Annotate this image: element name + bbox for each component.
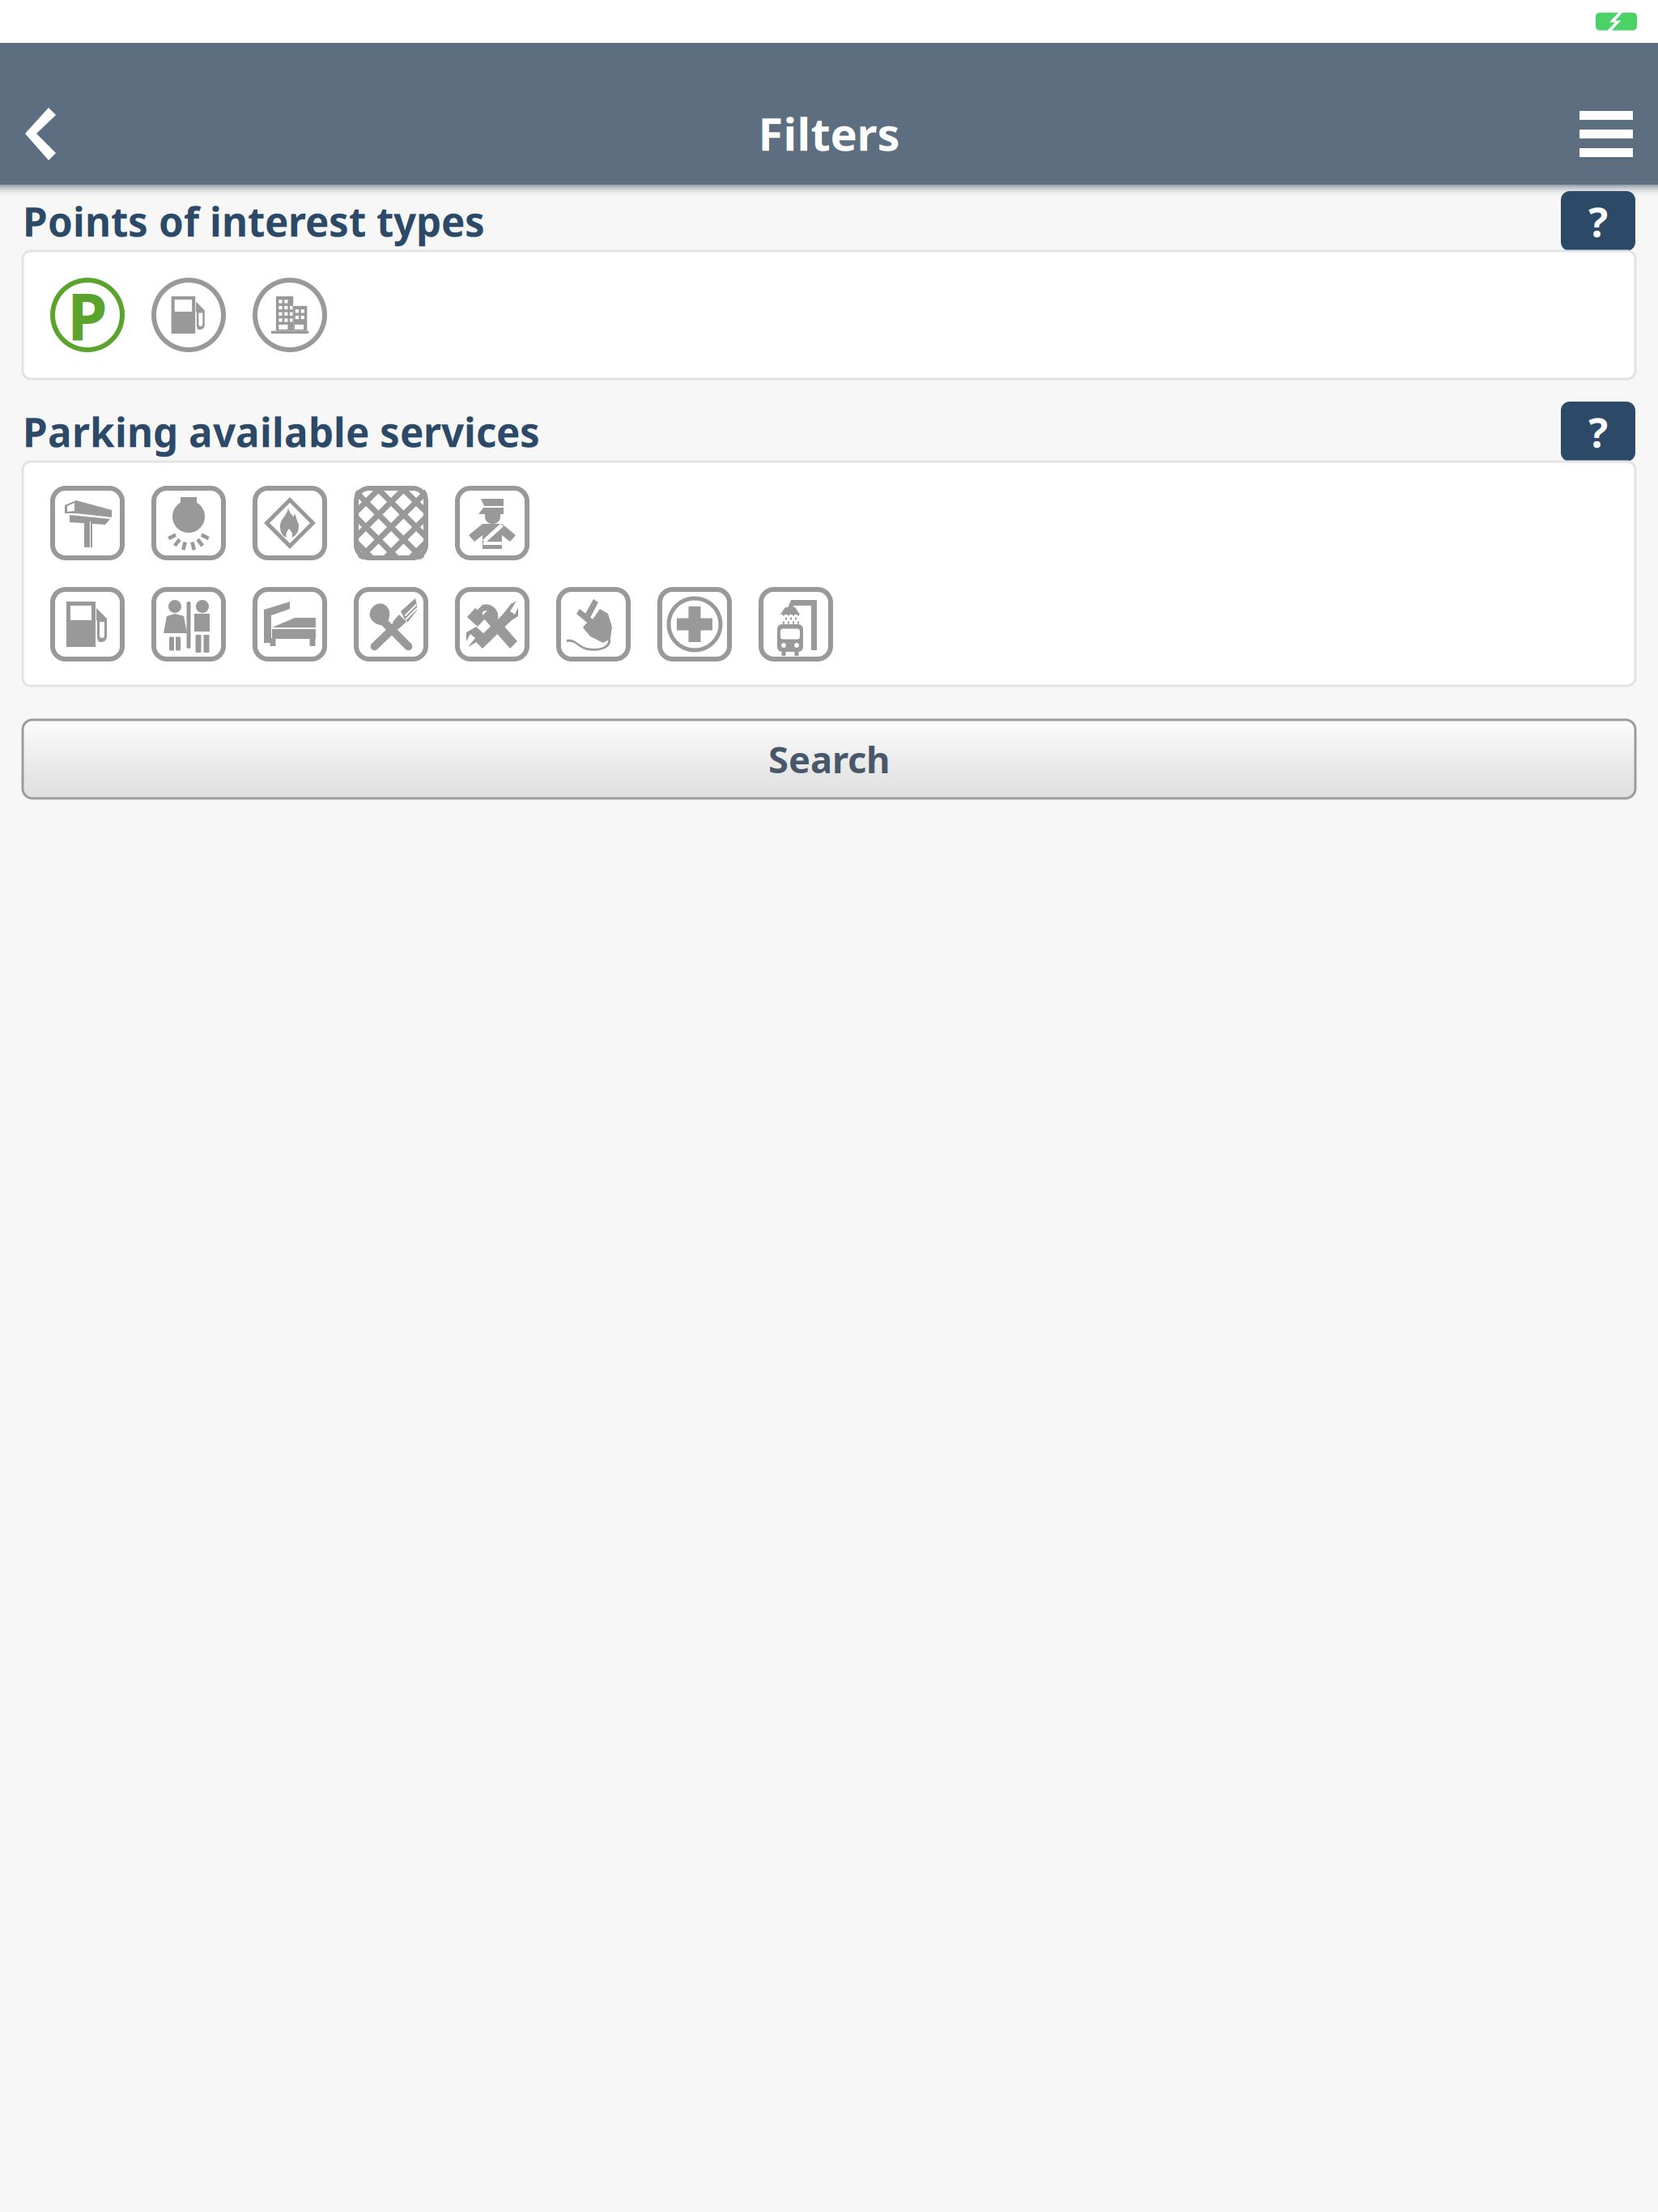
staticText: Parking available services [23,405,540,458]
button[interactable]: Hotel [253,278,327,352]
button[interactable]: Fire protection [253,486,327,560]
button[interactable]: Lighting [151,486,226,560]
button[interactable]: Search [0,720,1658,798]
button[interactable]: Accommodation [253,587,327,661]
staticText: ? [1588,404,1608,459]
button[interactable]: Electric charging [556,587,631,661]
staticText: Search [768,735,890,783]
button[interactable]: Help [1561,191,1635,251]
button[interactable]: Fuel station [151,278,226,352]
button[interactable]: Restaurant [354,587,428,661]
staticText: P [67,272,108,358]
button[interactable]: Help [1561,402,1635,462]
button[interactable]: Menu [1555,85,1633,183]
button[interactable]: Fenced area [354,486,428,560]
button[interactable]: Restrooms [151,587,226,661]
button[interactable]: Repairs [455,587,529,661]
button[interactable]: Back [25,85,103,183]
button[interactable]: Fuel [50,587,125,661]
staticText: Points of interest types [23,194,485,248]
staticText: ? [1588,194,1608,248]
button[interactable]: CCTV surveillance [50,486,125,560]
staticText: Filters [758,103,900,163]
button[interactable]: Security guard [455,486,529,560]
button[interactable]: Showers and transit [759,587,833,661]
button[interactable]: First aid [657,587,732,661]
button[interactable]: Parking [50,278,125,352]
